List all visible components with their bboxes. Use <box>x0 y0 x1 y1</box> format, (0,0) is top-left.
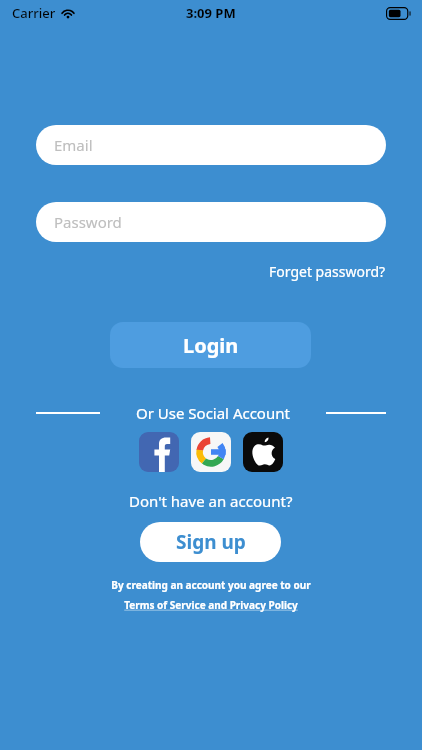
staticText: Login <box>183 332 239 359</box>
staticText: Sign up <box>176 529 246 555</box>
staticText: 3:09 PM <box>186 4 236 22</box>
staticText: Password <box>54 212 122 232</box>
button[interactable]: Sign up <box>140 522 281 562</box>
staticText: By creating an account you agree to our <box>111 578 311 592</box>
button[interactable]: Login <box>110 322 311 368</box>
staticText: Carrier <box>12 4 56 22</box>
button[interactable]: Terms of Service and Privacy Policy <box>124 598 298 612</box>
staticText: Email <box>54 135 93 155</box>
button[interactable]: Email <box>36 125 386 165</box>
button[interactable]: Sign in with Facebook <box>139 432 179 472</box>
button[interactable]: Sign in with Google <box>191 432 231 472</box>
staticText: Terms of Service and Privacy Policy <box>124 598 298 612</box>
button[interactable]: Sign in with Apple <box>243 432 283 472</box>
staticText: Or Use Social Account <box>136 403 290 423</box>
button[interactable]: Forget password? <box>246 259 386 283</box>
staticText: Forget password? <box>269 262 386 281</box>
staticText: Don't have an account? <box>129 491 293 511</box>
button[interactable]: Password <box>36 202 386 242</box>
